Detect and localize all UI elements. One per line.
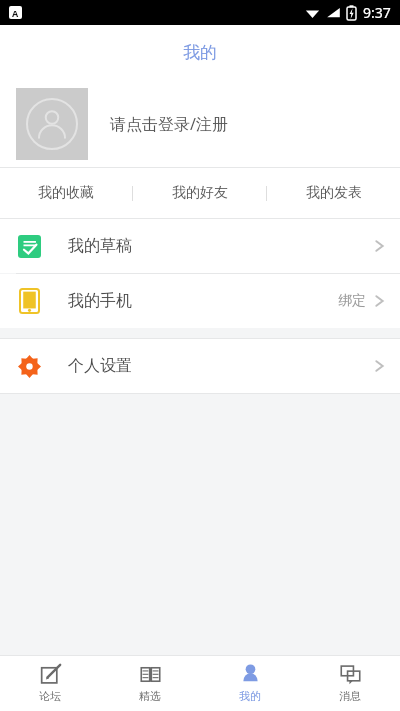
staticText: 我的 — [183, 42, 217, 63]
staticText: A — [12, 7, 19, 19]
staticText: 个人设置 — [68, 356, 132, 376]
staticText: 消息 — [339, 689, 361, 703]
staticText: 我的发表 — [306, 184, 362, 202]
staticText: 我的手机 — [68, 291, 132, 311]
button[interactable]: 精选 — [100, 656, 200, 711]
staticText: 我的好友 — [172, 184, 228, 202]
staticText: 请点击登录/注册 — [110, 113, 228, 135]
button[interactable]: 我的草稿 — [0, 219, 400, 273]
staticText: 我的收藏 — [38, 184, 94, 202]
button[interactable]: 个人设置 — [0, 339, 400, 393]
button[interactable]: 请点击登录/注册 — [0, 80, 400, 167]
button[interactable]: 消息 — [300, 656, 400, 711]
staticText: 我的 — [239, 689, 261, 703]
button[interactable]: 我的发表 — [267, 168, 400, 218]
staticText: 精选 — [139, 689, 161, 703]
button[interactable]: 我的好友 — [133, 168, 266, 218]
staticText: 绑定 — [338, 292, 366, 310]
button[interactable]: 我的收藏 — [0, 168, 132, 218]
button[interactable]: 我的 — [200, 656, 300, 711]
staticText: 9:37 — [363, 3, 391, 22]
staticText: 论坛 — [39, 689, 61, 703]
button[interactable]: 我的手机 — [0, 274, 400, 328]
button[interactable]: 论坛 — [0, 656, 100, 711]
staticText: 我的草稿 — [68, 236, 132, 256]
